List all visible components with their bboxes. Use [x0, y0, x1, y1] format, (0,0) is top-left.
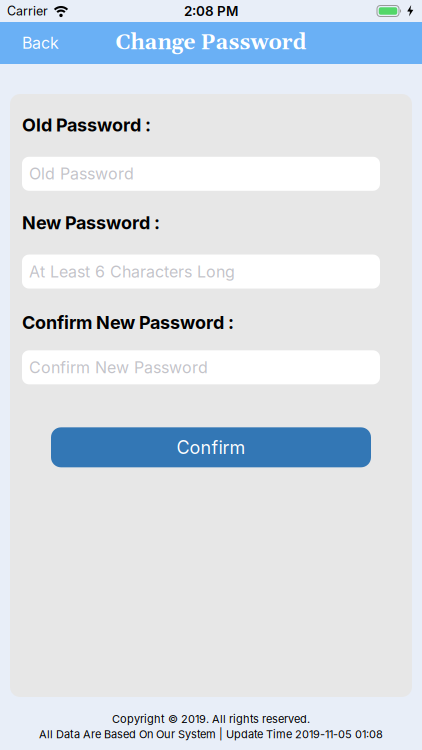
- button[interactable]: Back: [0, 22, 59, 64]
- button[interactable]: Confirm: [51, 427, 371, 467]
- staticText: 2:08 PM: [184, 3, 238, 19]
- staticText: Old Password: [29, 164, 134, 183]
- staticText: Confirm New Password: [29, 358, 208, 377]
- staticText: Back: [22, 33, 59, 53]
- button[interactable]: Confirm New Password: [22, 350, 380, 384]
- staticText: New Password :: [22, 212, 160, 234]
- staticText: Confirm: [176, 436, 245, 458]
- button[interactable]: At Least 6 Characters Long: [22, 255, 380, 289]
- staticText: Confirm New Password :: [22, 312, 234, 333]
- staticText: At Least 6 Characters Long: [29, 262, 235, 281]
- button[interactable]: Old Password: [22, 157, 380, 191]
- staticText: All Data Are Based On Our System | Updat…: [39, 728, 383, 741]
- staticText: Old Password :: [22, 114, 151, 136]
- staticText: Copyright © 2019. All rights reserved.: [112, 712, 310, 726]
- staticText: Carrier: [7, 3, 48, 18]
- staticText: Change Password: [115, 30, 306, 56]
